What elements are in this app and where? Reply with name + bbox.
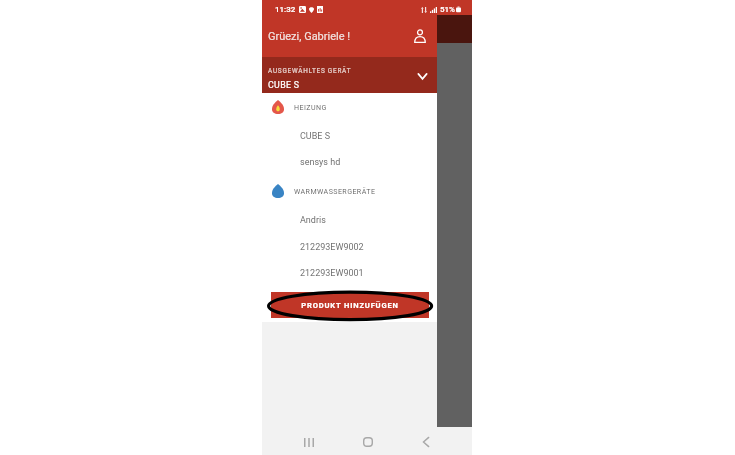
- button[interactable]: Account: [411, 27, 429, 45]
- button[interactable]: Recent apps: [297, 430, 321, 454]
- button[interactable]: sensys hd: [262, 149, 437, 175]
- staticText: CUBE S: [300, 131, 330, 142]
- staticText: HEIZUNG: [294, 103, 327, 111]
- staticText: Andris: [300, 215, 326, 226]
- staticText: 212293EW9001: [300, 268, 364, 279]
- staticText: CUBE S: [268, 80, 300, 90]
- button[interactable]: Andris: [262, 207, 437, 233]
- staticText: AUSGEWÄHLTES GERÄT: [268, 67, 352, 75]
- button[interactable]: Back: [414, 430, 438, 454]
- button[interactable]: CUBE S: [262, 123, 437, 149]
- staticText: WARMWASSERGERÄTE: [294, 187, 376, 195]
- button[interactable]: Home: [356, 430, 380, 454]
- button[interactable]: 212293EW9002: [262, 234, 437, 260]
- staticText: PRODUKT HINZUFÜGEN: [301, 301, 399, 310]
- button[interactable]: AUSGEWÄHLTES GERÄT: [262, 57, 437, 93]
- button[interactable]: PRODUKT HINZUFÜGEN: [271, 292, 429, 318]
- staticText: sensys hd: [300, 157, 341, 168]
- other: Expand device list: [415, 69, 429, 83]
- staticText: 212293EW9002: [300, 242, 364, 253]
- staticText: 51%: [440, 5, 455, 14]
- staticText: Grüezi, Gabriele !: [268, 30, 351, 43]
- button[interactable]: 212293EW9001: [262, 260, 437, 286]
- staticText: 11:32: [275, 5, 296, 14]
